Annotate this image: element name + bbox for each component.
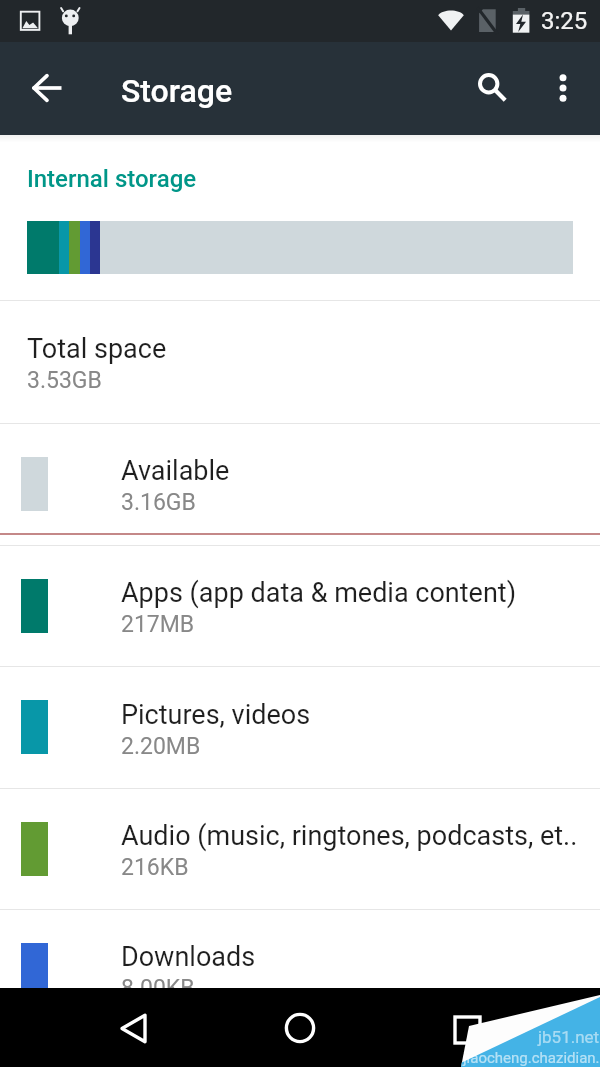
button[interactable]: More options [529,54,597,122]
staticText: Audio (music, ringtones, podcasts, et.. [121,820,578,852]
staticText: 3.53GB [27,367,102,394]
staticText: Downloads [121,941,256,973]
staticText: 217MB [121,611,195,638]
button[interactable]: Audio (music, ringtones, podcasts, et.. [0,788,600,909]
staticText: Total space [27,333,167,365]
staticText: Apps (app data & media content) [121,577,517,609]
button[interactable]: Total space [0,300,600,423]
button[interactable]: Apps (app data & media content) [0,545,600,666]
button[interactable]: Search [458,53,526,121]
staticText: 3.16GB [121,489,196,516]
staticText: Available [121,455,230,487]
staticText: Storage [121,72,233,110]
button[interactable]: Available [0,423,600,544]
button[interactable]: Navigate up [13,54,81,122]
staticText: jb51.net [538,1027,600,1047]
button[interactable]: Downloads [0,909,600,1030]
button[interactable]: Pictures, videos [0,666,600,788]
button[interactable]: Recent apps [429,995,505,1065]
staticText: Pictures, videos [121,699,311,731]
staticText: jiaocheng.chazidian.com [463,1049,600,1067]
staticText: Internal storage [27,165,197,193]
staticText: 8.00KB [121,975,195,1002]
button[interactable]: Home [262,993,338,1063]
button[interactable]: Back [95,993,171,1063]
staticText: 2.20MB [121,733,201,760]
staticText: 216KB [121,854,189,881]
staticText: 3:25 [541,7,588,35]
